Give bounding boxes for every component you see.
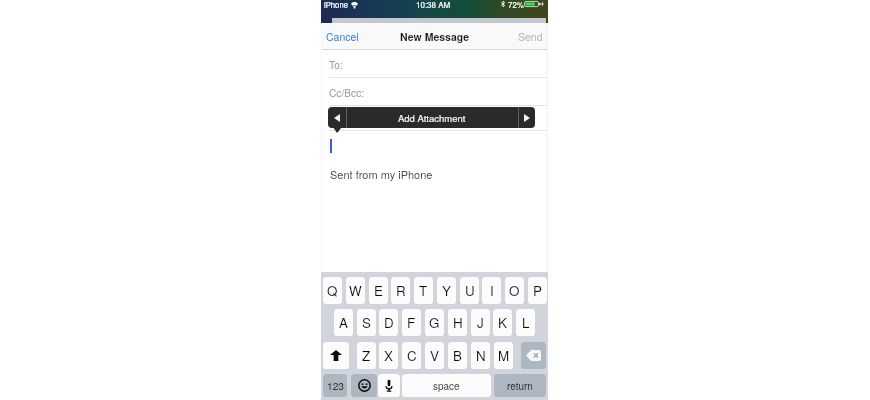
button[interactable]: Emoji xyxy=(351,374,377,397)
staticText: 123 xyxy=(327,378,344,393)
staticText: return xyxy=(507,379,533,393)
staticText: space xyxy=(433,379,460,393)
staticText: J xyxy=(477,313,484,332)
staticText: Send xyxy=(518,29,543,44)
button[interactable]: P xyxy=(528,277,547,304)
button[interactable]: K xyxy=(493,309,512,336)
button[interactable]: Add Attachment xyxy=(346,107,518,128)
button[interactable]: X xyxy=(379,342,398,369)
button[interactable]: space xyxy=(402,374,491,397)
button[interactable]: Backspace xyxy=(521,342,546,369)
staticText: N xyxy=(476,346,486,365)
button[interactable]: Z xyxy=(357,342,376,369)
staticText: Cc/Bcc: xyxy=(329,85,365,100)
button[interactable]: Shift xyxy=(323,342,349,369)
staticText: Q xyxy=(327,281,338,300)
button[interactable]: I xyxy=(482,277,501,304)
staticText: M xyxy=(498,346,510,365)
button[interactable]: Y xyxy=(437,277,456,304)
staticText: To: xyxy=(329,57,343,72)
button[interactable]: G xyxy=(425,309,444,336)
staticText: X xyxy=(384,346,393,365)
staticText: Sent from my iPhone xyxy=(330,166,433,182)
staticText: D xyxy=(384,313,394,332)
staticText: Z xyxy=(362,346,371,365)
button[interactable]: Dictate xyxy=(378,374,400,397)
staticText: K xyxy=(498,313,507,332)
staticText: S xyxy=(362,313,371,332)
button[interactable]: F xyxy=(402,309,421,336)
staticText: W xyxy=(349,281,362,300)
button[interactable]: V xyxy=(425,342,444,369)
staticText: G xyxy=(429,313,440,332)
button[interactable]: Q xyxy=(323,277,342,304)
button[interactable]: B xyxy=(448,342,467,369)
button[interactable]: Cancel xyxy=(326,29,359,44)
staticText: F xyxy=(407,313,416,332)
button[interactable]: T xyxy=(414,277,433,304)
button[interactable]: R xyxy=(391,277,410,304)
button[interactable]: Previous xyxy=(328,107,345,128)
staticText: E xyxy=(374,281,383,300)
button[interactable]: To: xyxy=(321,50,548,78)
button[interactable]: J xyxy=(471,309,490,336)
button[interactable]: A xyxy=(334,309,353,336)
button[interactable] xyxy=(321,106,548,131)
staticText: C xyxy=(407,346,417,365)
staticText: iPhone xyxy=(324,0,348,10)
button[interactable]: O xyxy=(505,277,524,304)
staticText: P xyxy=(533,281,542,300)
button[interactable]: H xyxy=(448,309,467,336)
button[interactable]: U xyxy=(460,277,479,304)
button[interactable]: W xyxy=(346,277,365,304)
staticText: Cancel xyxy=(326,29,359,44)
staticText: Y xyxy=(442,281,451,300)
staticText: A xyxy=(339,313,348,332)
staticText: I xyxy=(490,281,494,300)
staticText: T xyxy=(419,281,428,300)
button[interactable]: C xyxy=(402,342,421,369)
staticText: O xyxy=(509,281,520,300)
staticText: V xyxy=(430,346,439,365)
button[interactable]: L xyxy=(516,309,535,336)
staticText: U xyxy=(465,281,475,300)
button[interactable]: Cc/Bcc: xyxy=(321,78,548,106)
staticText: 10:38 AM xyxy=(416,0,451,10)
staticText: R xyxy=(396,281,406,300)
button[interactable]: 123 xyxy=(323,374,347,397)
button[interactable]: M xyxy=(494,342,513,369)
staticText: H xyxy=(453,313,463,332)
button[interactable]: return xyxy=(494,374,546,397)
button[interactable]: Next xyxy=(518,107,535,128)
button[interactable]: E xyxy=(369,277,388,304)
button[interactable]: N xyxy=(471,342,490,369)
button[interactable]: S xyxy=(357,309,376,336)
staticText: 72% xyxy=(508,0,524,10)
button[interactable]: Send xyxy=(518,29,543,44)
staticText: Add Attachment xyxy=(398,111,466,125)
button[interactable]: D xyxy=(379,309,398,336)
staticText: L xyxy=(522,313,530,332)
staticText: New Message xyxy=(400,29,470,44)
staticText: B xyxy=(453,346,462,365)
